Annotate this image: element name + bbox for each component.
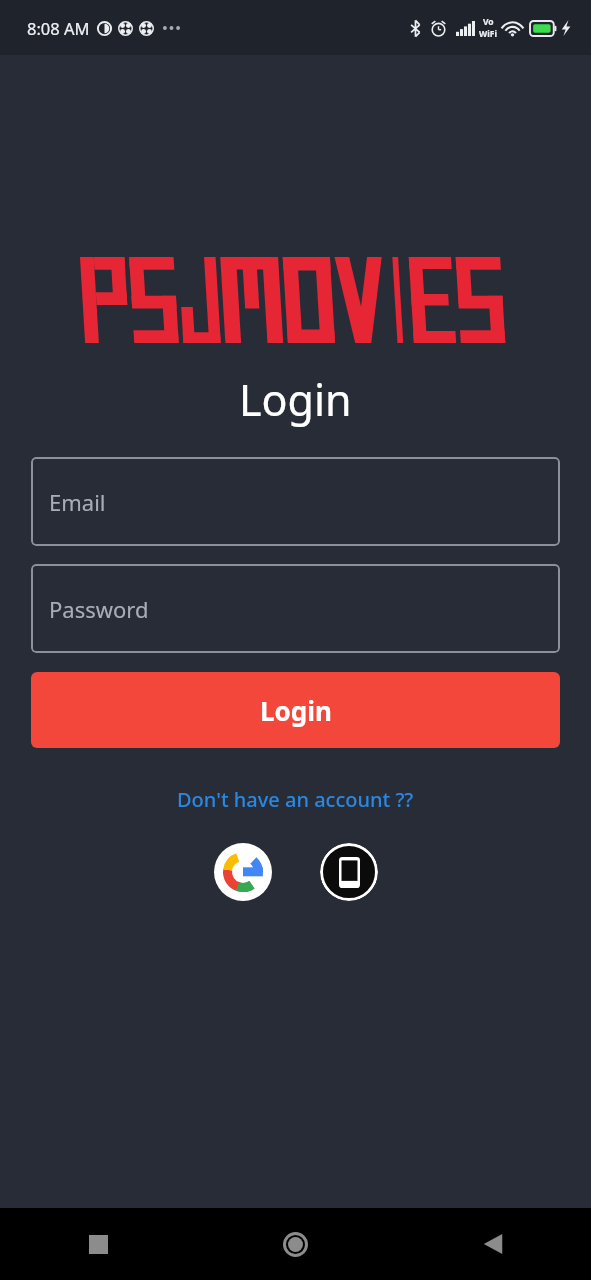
button[interactable]: Email	[31, 457, 560, 546]
button[interactable]: Sign in with Google	[214, 843, 272, 901]
button[interactable]: Back	[394, 1208, 591, 1280]
button[interactable]: Recent apps	[0, 1208, 197, 1280]
staticText: 8:08 AM	[27, 17, 90, 39]
staticText: Vo	[483, 16, 494, 28]
button[interactable]: Don't have an account ??	[171, 780, 420, 819]
staticText: Login	[239, 370, 352, 429]
button[interactable]: Login	[31, 672, 560, 748]
button[interactable]: Sign in with phone number	[320, 843, 378, 901]
staticText: Don't have an account ??	[177, 786, 414, 813]
staticText: Login	[260, 693, 332, 728]
button[interactable]: Home	[197, 1208, 394, 1280]
button[interactable]: Password	[31, 564, 560, 653]
staticText: WiFi	[479, 28, 497, 40]
staticText: Email	[49, 487, 106, 517]
staticText: Password	[49, 594, 149, 624]
